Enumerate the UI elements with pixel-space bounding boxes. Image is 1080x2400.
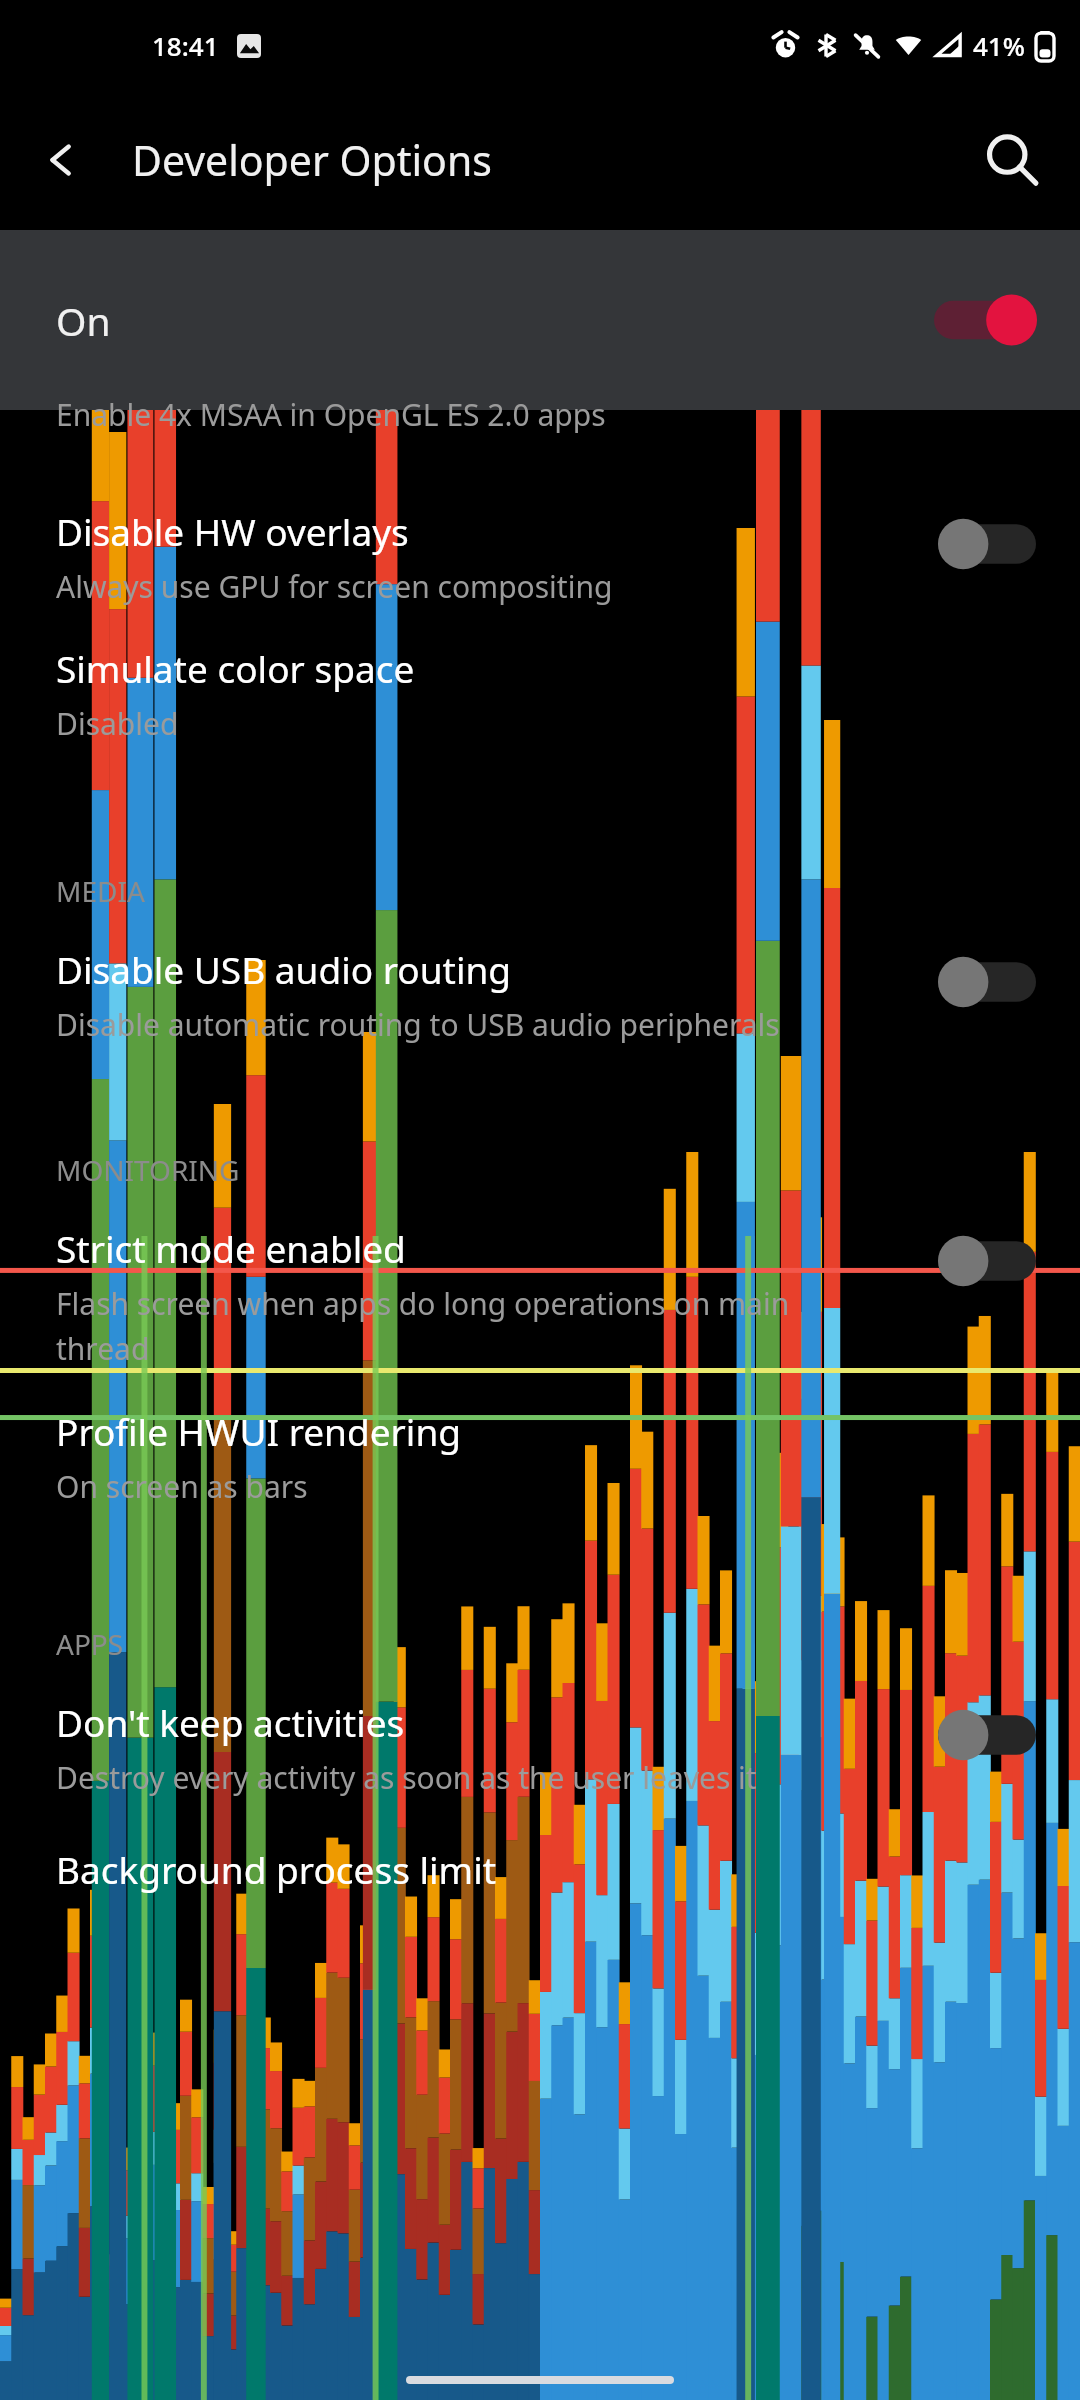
staticText: Don't keep activities (56, 1697, 405, 1747)
button[interactable]: Background process limit (0, 1844, 1080, 1894)
button[interactable]: Simulate color space (0, 643, 1080, 744)
staticText: Destroy every activity as soon as the us… (56, 1757, 757, 1798)
button[interactable]: Disable USB audio routing (0, 944, 1080, 1045)
staticText: Developer Options (132, 132, 492, 188)
staticText: Enable 4x MSAA in OpenGL ES 2.0 apps (56, 394, 606, 435)
button[interactable]: Back (34, 132, 90, 188)
staticText: Simulate color space (56, 643, 415, 693)
staticText: Background process limit (56, 1844, 497, 1894)
staticText: MONITORING (56, 1151, 240, 1189)
staticText: On (56, 294, 111, 347)
staticText: MEDIA (56, 872, 145, 910)
staticText: Profile HWUI rendering (56, 1406, 462, 1456)
staticText: On screen as bars (56, 1466, 308, 1507)
staticText: Disable USB audio routing (56, 944, 512, 994)
staticText: 41% (973, 28, 1025, 63)
staticText: Disabled (56, 703, 179, 744)
staticText: Flash screen when apps do long operation… (56, 1283, 790, 1368)
staticText: Always use GPU for screen compositing (56, 566, 613, 607)
button[interactable]: Don't keep activities (0, 1697, 1080, 1798)
staticText: Disable HW overlays (56, 506, 409, 556)
staticText: APPS (56, 1625, 124, 1663)
button[interactable]: Profile HWUI rendering (0, 1406, 1080, 1507)
staticText: Disable automatic routing to USB audio p… (56, 1004, 780, 1045)
button[interactable]: On (0, 230, 1080, 410)
staticText: 18:41 (152, 28, 219, 63)
button[interactable]: Strict mode enabled (0, 1223, 1080, 1368)
button[interactable]: Search (978, 126, 1046, 194)
button[interactable]: Disable HW overlays (0, 506, 1080, 607)
staticText: Strict mode enabled (56, 1223, 406, 1273)
